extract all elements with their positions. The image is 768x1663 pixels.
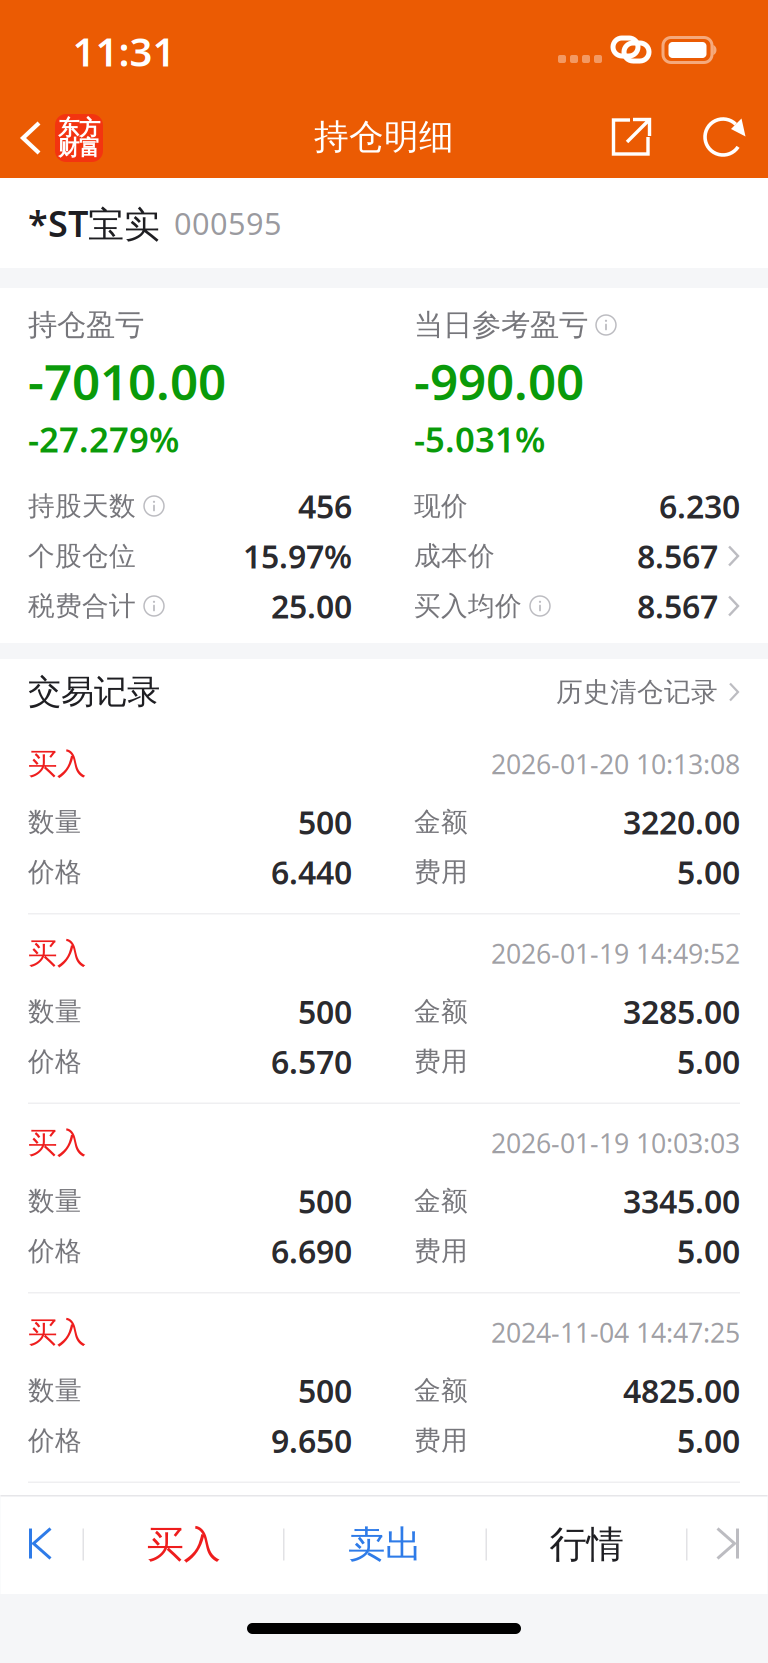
staticText: 行情 — [549, 1522, 623, 1567]
staticText: 价格 — [28, 1045, 82, 1078]
staticText: 费用 — [414, 1424, 468, 1457]
button[interactable]: 上一个 — [0, 1496, 82, 1592]
staticText: 5.00 — [677, 1230, 740, 1272]
staticText: 数量 — [28, 1374, 82, 1407]
staticText: 持仓盈亏 — [28, 307, 144, 343]
staticText: 11:31 — [72, 24, 175, 77]
staticText: 456 — [298, 485, 352, 527]
staticText: -7010.00 — [28, 348, 226, 414]
staticText: 买入均价 — [414, 590, 522, 622]
staticText: 税费合计 — [28, 590, 136, 622]
button[interactable]: 卖出 — [284, 1496, 485, 1592]
button[interactable]: 行情 — [487, 1496, 686, 1592]
staticText: 成本价 — [414, 540, 495, 572]
button[interactable]: 买入 — [84, 1496, 283, 1592]
staticText: 交易记录 — [28, 671, 160, 712]
staticText: 500 — [298, 1180, 352, 1222]
staticText: 8.567 — [637, 585, 718, 627]
staticText: 2024-11-04 14:47:25 — [491, 1315, 740, 1350]
staticText: -990.00 — [414, 348, 584, 414]
button[interactable]: 返回 东方财富 — [19, 107, 133, 169]
staticText: 6.230 — [659, 485, 740, 527]
staticText: 000595 — [174, 203, 282, 243]
staticText: 数量 — [28, 806, 82, 838]
staticText: 财富 — [58, 135, 100, 161]
staticText: 费用 — [414, 1235, 468, 1267]
staticText: 买入 — [146, 1522, 220, 1567]
staticText: 500 — [298, 801, 352, 843]
staticText: 价格 — [28, 856, 82, 888]
button[interactable]: 历史清仓记录 — [556, 676, 740, 708]
button[interactable]: 分享 — [607, 113, 655, 161]
staticText: 500 — [298, 1369, 352, 1412]
staticText: *ST宝实 — [28, 199, 160, 247]
staticText: 费用 — [414, 1045, 468, 1078]
staticText: 东方 — [58, 115, 100, 141]
staticText: 金额 — [414, 995, 468, 1028]
staticText: 2026-01-19 14:49:52 — [491, 936, 740, 971]
staticText: 买入 — [28, 1314, 86, 1350]
staticText: 5.00 — [677, 1040, 740, 1083]
staticText: 5.00 — [677, 851, 740, 893]
staticText: 25.00 — [271, 585, 352, 627]
staticText: 6.690 — [271, 1230, 352, 1272]
staticText: -27.279% — [28, 416, 179, 462]
staticText: 费用 — [414, 856, 468, 888]
staticText: 5.00 — [677, 1419, 740, 1462]
staticText: 6.440 — [271, 851, 352, 893]
staticText: 4825.00 — [623, 1369, 740, 1412]
staticText: 价格 — [28, 1424, 82, 1457]
staticText: 2026-01-19 10:03:03 — [491, 1125, 740, 1161]
staticText: 当日参考盈亏 — [414, 307, 588, 343]
staticText: 数量 — [28, 1185, 82, 1217]
staticText: 金额 — [414, 1185, 468, 1217]
staticText: 6.570 — [271, 1040, 352, 1083]
staticText: 买入 — [28, 935, 86, 971]
staticText: 金额 — [414, 1374, 468, 1407]
staticText: 买入 — [28, 746, 86, 782]
staticText: 现价 — [414, 490, 468, 522]
staticText: 金额 — [414, 806, 468, 838]
staticText: 历史清仓记录 — [556, 676, 718, 708]
staticText: 9.650 — [271, 1419, 352, 1462]
staticText: 数量 — [28, 995, 82, 1028]
button[interactable]: 下一个 — [687, 1496, 767, 1592]
staticText: 个股仓位 — [28, 540, 136, 572]
staticText: 持仓明细 — [314, 116, 454, 158]
staticText: 3345.00 — [623, 1180, 740, 1222]
staticText: 2026-01-20 10:13:08 — [491, 746, 740, 782]
staticText: 买入 — [28, 1125, 86, 1161]
staticText: 3220.00 — [623, 801, 740, 843]
staticText: -5.031% — [414, 416, 545, 462]
staticText: 持股天数 — [28, 490, 136, 522]
staticText: 15.97% — [243, 535, 352, 577]
button[interactable]: 刷新 — [701, 113, 749, 161]
staticText: 价格 — [28, 1235, 82, 1267]
staticText: 500 — [298, 990, 352, 1033]
staticText: 3285.00 — [623, 990, 740, 1033]
staticText: 8.567 — [637, 535, 718, 577]
staticText: 卖出 — [348, 1522, 422, 1567]
